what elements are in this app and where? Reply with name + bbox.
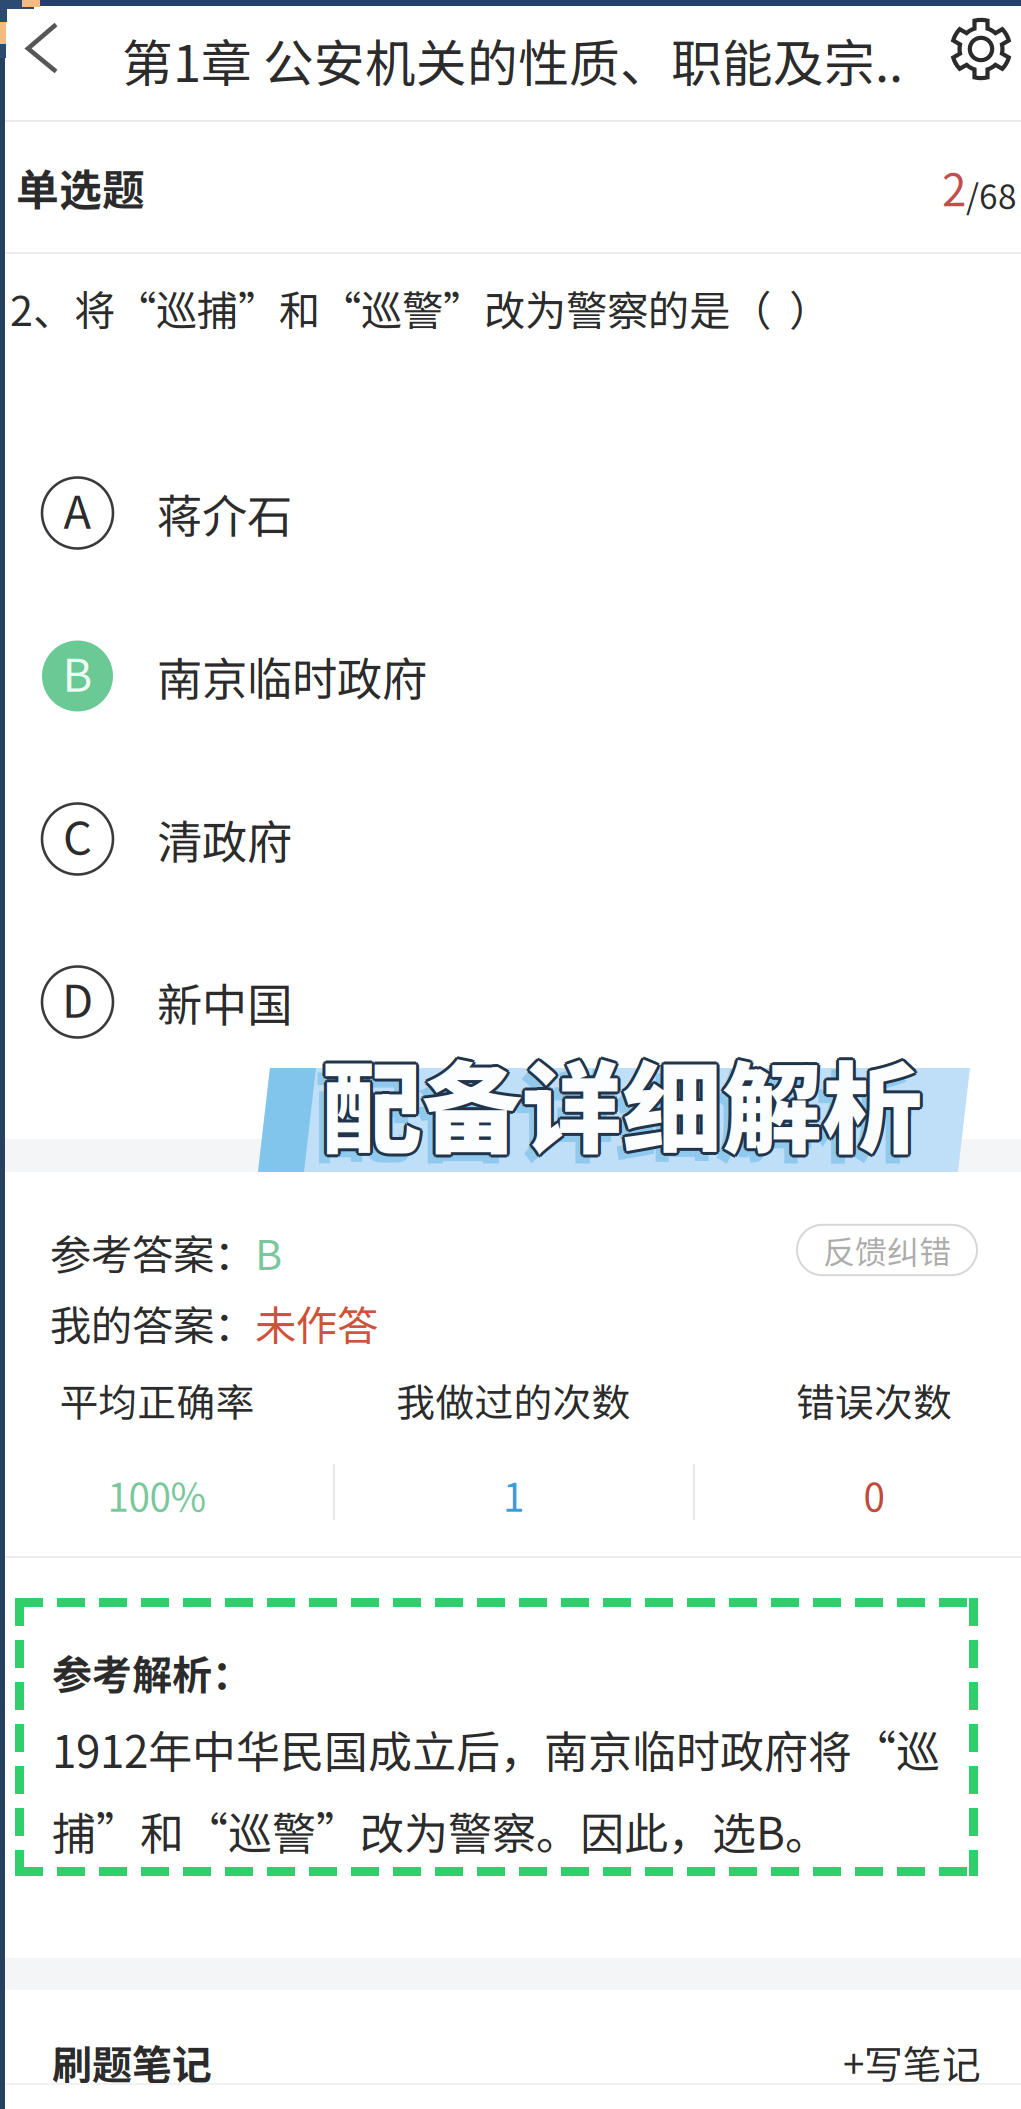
staticText: 新中国: [157, 969, 292, 1035]
staticText: 配备详细解析: [324, 1028, 924, 1172]
staticText: 参考解析：: [52, 1643, 252, 1701]
button[interactable]: +写笔记: [843, 2034, 1021, 2090]
staticText: /68: [966, 171, 1017, 219]
staticText: 2: [942, 155, 966, 219]
staticText: 100%: [107, 1467, 206, 1523]
staticText: 参考答案：: [50, 1222, 255, 1282]
staticText: 蒋介石: [157, 480, 292, 546]
button[interactable]: Back: [0, 0, 82, 120]
button[interactable]: C: [0, 789, 1021, 889]
staticText: 2、将“巡捕”和“巡警”改为警察的是（ ）: [10, 278, 830, 338]
staticText: 未作答: [255, 1293, 378, 1353]
staticText: 清政府: [157, 806, 292, 872]
staticText: 配备详细解析: [322, 1033, 922, 1177]
staticText: 配备详细解析: [320, 1032, 920, 1176]
staticText: 1: [503, 1467, 524, 1523]
staticText: B: [62, 639, 92, 705]
staticText: 单选题: [16, 156, 145, 218]
staticText: 我的答案：: [50, 1293, 255, 1353]
button[interactable]: D: [0, 952, 1021, 1052]
staticText: 1912年中华民国成立后，南京临时政府将“巡: [52, 1717, 940, 1781]
staticText: 错误次数: [796, 1372, 952, 1428]
staticText: 捕”和“巡警”改为警察。因此，选B。: [52, 1799, 829, 1862]
staticText: 配备详细解析: [319, 1030, 919, 1174]
staticText: 平均正确率: [59, 1372, 254, 1428]
staticText: A: [63, 476, 91, 542]
staticText: 配备详细解析: [324, 1032, 924, 1176]
button[interactable]: A: [0, 463, 1021, 563]
staticText: 配备详细解析: [322, 1030, 922, 1174]
staticText: 配备详细解析: [320, 1028, 920, 1172]
button[interactable]: 反馈纠错: [797, 1225, 977, 1275]
staticText: 配备详细解析: [322, 1027, 922, 1171]
staticText: 我做过的次数: [396, 1372, 630, 1428]
button[interactable]: B: [0, 626, 1021, 726]
staticText: 配备详细解析: [314, 1039, 914, 1183]
staticText: B: [255, 1222, 282, 1282]
staticText: D: [62, 965, 93, 1031]
staticText: C: [63, 802, 92, 868]
staticText: 配备详细解析: [325, 1030, 925, 1174]
staticText: 南京临时政府: [157, 643, 427, 709]
staticText: 反馈纠错: [823, 1227, 951, 1273]
staticText: 0: [863, 1467, 884, 1523]
staticText: 第1章 公安机关的性质、职能及宗..: [122, 23, 903, 97]
staticText: 刷题笔记: [52, 2033, 212, 2091]
button[interactable]: Settings: [949, 0, 1021, 120]
staticText: +写笔记: [843, 2034, 981, 2090]
